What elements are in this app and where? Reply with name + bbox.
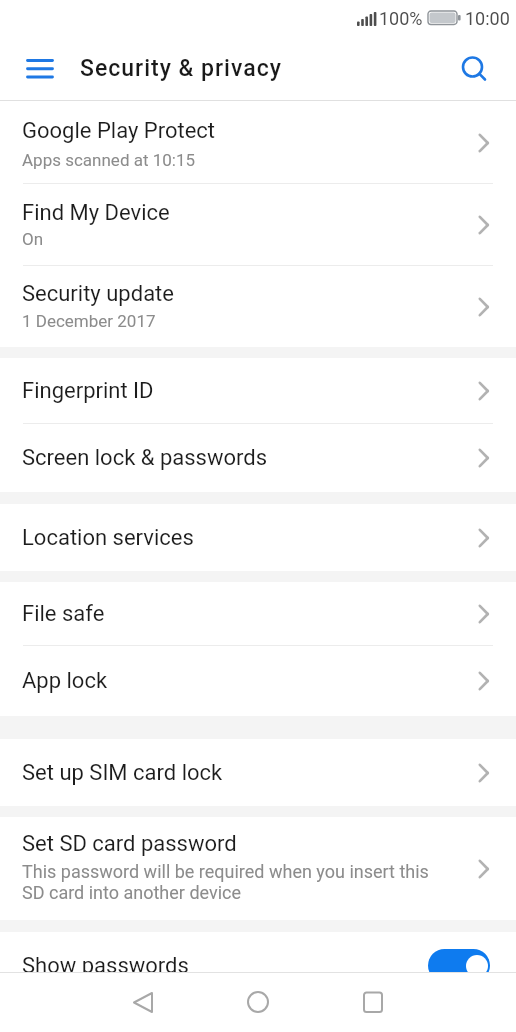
button[interactable]: Show passwords (0, 932, 516, 999)
button[interactable]: App lock (0, 646, 516, 716)
staticText: 10:00 (465, 8, 510, 29)
button[interactable]: Set SD card password (0, 817, 516, 920)
staticText: Screen lock & passwords (22, 445, 268, 471)
button[interactable] (428, 949, 490, 982)
staticText: Set up SIM card lock (22, 760, 223, 786)
staticText: 1 December 2017 (22, 311, 156, 331)
staticText: Apps scanned at 10:15 (22, 150, 196, 170)
button[interactable]: Screen lock & passwords (0, 424, 516, 492)
button[interactable]: Location services (0, 504, 516, 571)
staticText: App lock (22, 668, 108, 694)
button[interactable] (228, 972, 288, 1032)
button[interactable]: Fingerprint ID (0, 358, 516, 424)
button[interactable]: Set up SIM card lock (0, 739, 516, 806)
staticText: Security update (22, 281, 174, 307)
staticText: Location services (22, 525, 194, 551)
staticText: Show passwords (22, 953, 189, 979)
button[interactable] (16, 44, 64, 92)
staticText: File safe (22, 601, 105, 627)
button[interactable]: Google Play Protect (0, 101, 516, 184)
staticText: Find My Device (22, 200, 170, 226)
button[interactable] (113, 972, 173, 1032)
staticText: Google Play Protect (22, 118, 216, 144)
staticText: Fingerprint ID (22, 378, 154, 404)
staticText: This password will be required when you … (22, 861, 429, 903)
staticText: Set SD card password (22, 831, 237, 857)
button[interactable] (343, 972, 403, 1032)
staticText: On (22, 229, 44, 249)
staticText: 100% (379, 8, 423, 29)
button[interactable]: Security update (0, 266, 516, 347)
staticText: Security & privacy (80, 55, 282, 82)
button[interactable]: File safe (0, 582, 516, 646)
button[interactable]: Find My Device (0, 184, 516, 266)
button[interactable] (449, 44, 497, 92)
